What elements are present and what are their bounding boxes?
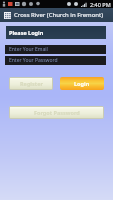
staticText: Enter Your Password	[9, 57, 58, 64]
button[interactable]: Forgot Password	[10, 107, 103, 118]
button[interactable]: Enter Your Password	[5, 56, 106, 65]
staticText: Please Login	[9, 29, 44, 36]
button[interactable]: Please Login	[6, 26, 106, 39]
staticText: Register	[20, 80, 43, 87]
staticText: Cross River (Church in Fremont)	[14, 11, 103, 19]
button[interactable]: Enter Your Email	[5, 45, 106, 54]
staticText: Enter Your Email	[9, 46, 48, 53]
staticText: Login	[74, 80, 90, 87]
button[interactable]: Login	[60, 77, 104, 90]
button[interactable]: Register	[10, 78, 52, 89]
staticText: 2:40 PM	[90, 1, 111, 8]
staticText: Forgot Password	[34, 109, 80, 116]
